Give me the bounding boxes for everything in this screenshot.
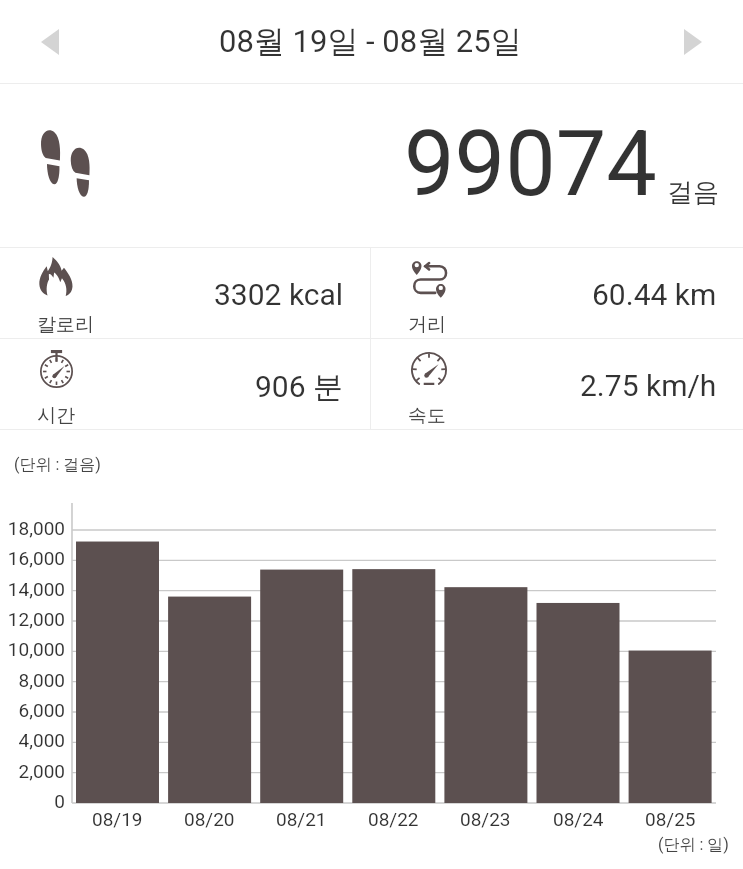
staticText: 08/20 <box>184 808 235 830</box>
staticText: 08/22 <box>368 808 419 830</box>
staticText: 6,000 <box>18 699 65 721</box>
staticText: 16,000 <box>7 547 65 569</box>
staticText: 8,000 <box>18 669 65 691</box>
staticText: 99074 <box>404 112 657 217</box>
staticText: 거리 <box>408 313 446 337</box>
staticText: 10,000 <box>7 638 65 660</box>
staticText: 08/25 <box>645 808 696 830</box>
button[interactable]: 99074 <box>0 84 743 248</box>
button[interactable]: 시간 <box>0 339 370 429</box>
staticText: 0 <box>54 790 65 812</box>
staticText: 2.75 km/h <box>580 368 717 403</box>
staticText: 18,000 <box>7 517 65 539</box>
button[interactable]: 속도 <box>371 339 743 429</box>
staticText: 칼로리 <box>37 313 94 337</box>
staticText: 속도 <box>408 404 446 428</box>
staticText: (단위 : 일) <box>658 835 729 855</box>
staticText: 시간 <box>37 404 75 428</box>
staticText: 12,000 <box>7 608 65 630</box>
staticText: 4,000 <box>18 729 65 751</box>
staticText: 08/19 <box>92 808 143 830</box>
staticText: 3302 kcal <box>214 277 344 312</box>
staticText: 08/21 <box>276 808 327 830</box>
staticText: 906 분 <box>255 368 344 406</box>
button[interactable]: 칼로리 <box>0 248 370 338</box>
staticText: 걸음 <box>667 176 719 209</box>
staticText: 08/23 <box>460 808 511 830</box>
button[interactable]: Previous week <box>22 14 78 70</box>
staticText: 14,000 <box>7 578 65 600</box>
staticText: (단위 : 걸음) <box>14 455 101 475</box>
button[interactable]: Next week <box>665 14 721 70</box>
staticText: 2,000 <box>18 760 65 782</box>
button[interactable]: 거리 <box>371 248 743 338</box>
staticText: 60.44 km <box>592 277 717 312</box>
staticText: 08월 19일 - 08월 25일 <box>219 22 522 61</box>
staticText: 08/24 <box>553 808 604 830</box>
